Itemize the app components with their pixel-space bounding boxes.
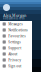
staticText: Favourites bbox=[8, 34, 25, 38]
button[interactable]: Messages bbox=[0, 21, 32, 27]
button[interactable]: Sign out bbox=[0, 63, 32, 69]
button[interactable]: Settings bbox=[0, 39, 32, 45]
staticText: Notifications bbox=[8, 28, 27, 32]
button[interactable]: About bbox=[0, 51, 32, 57]
staticText: About bbox=[8, 52, 17, 56]
button[interactable]: Privacy bbox=[0, 57, 32, 63]
staticText: alex@mail.com bbox=[3, 16, 25, 20]
staticText: Messages bbox=[8, 22, 22, 26]
button[interactable]: Favourites bbox=[0, 33, 32, 39]
button[interactable]: Support bbox=[0, 45, 32, 51]
staticText: Privacy bbox=[8, 58, 21, 62]
button[interactable]: Notifications bbox=[0, 27, 32, 33]
staticText: Alex Morgan bbox=[3, 13, 26, 18]
staticText: Settings bbox=[8, 40, 20, 44]
staticText: Sign out bbox=[8, 64, 21, 68]
staticText: Support bbox=[8, 46, 21, 50]
